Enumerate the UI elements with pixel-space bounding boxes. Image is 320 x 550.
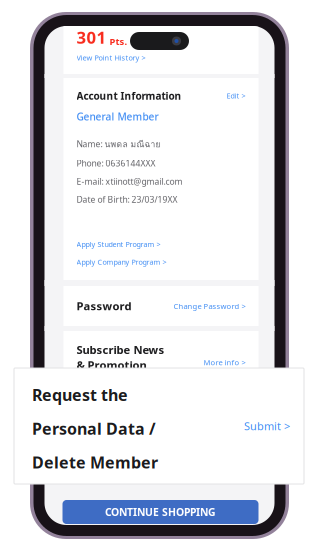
staticText: Edit > [226, 91, 245, 101]
staticText: Phone: 0636144XXX [76, 157, 155, 169]
button[interactable]: Edit > [226, 91, 245, 101]
staticText: General Member [76, 110, 158, 123]
staticText: Submit > [244, 419, 290, 433]
button[interactable]: Change Password > [173, 301, 245, 311]
staticText: Pts. [109, 35, 127, 48]
staticText: Change Password > [173, 301, 245, 311]
staticText: Apply Student Program > [76, 239, 160, 249]
staticText: Password [76, 298, 131, 314]
staticText: More info > [203, 357, 245, 367]
staticText: Account Information [76, 89, 181, 103]
button[interactable]: Apply Student Program > [76, 239, 160, 249]
staticText: Date of Birth: 23/03/19XX [76, 194, 177, 205]
button[interactable]: Apply Company Program > [76, 257, 166, 267]
staticText: 301 [76, 26, 106, 49]
staticText: Name: นพดล มณีฉาย [76, 137, 160, 151]
staticText: Subscribe News & Promotion [76, 342, 164, 372]
button[interactable]: More info > [203, 331, 245, 367]
button[interactable]: View Point History > [76, 49, 145, 67]
staticText: Apply Company Program > [76, 257, 166, 267]
button[interactable]: Submit > [244, 419, 290, 433]
button[interactable]: CONTINUE SHOPPING [62, 500, 258, 524]
staticText: CONTINUE SHOPPING [105, 505, 216, 519]
staticText: E-mail: xtiinott@gmail.com [76, 176, 182, 187]
staticText: Personal Data / [32, 418, 156, 439]
staticText: Delete Member [32, 451, 158, 473]
staticText: View Point History > [76, 53, 145, 63]
staticText: Request the [32, 384, 128, 406]
